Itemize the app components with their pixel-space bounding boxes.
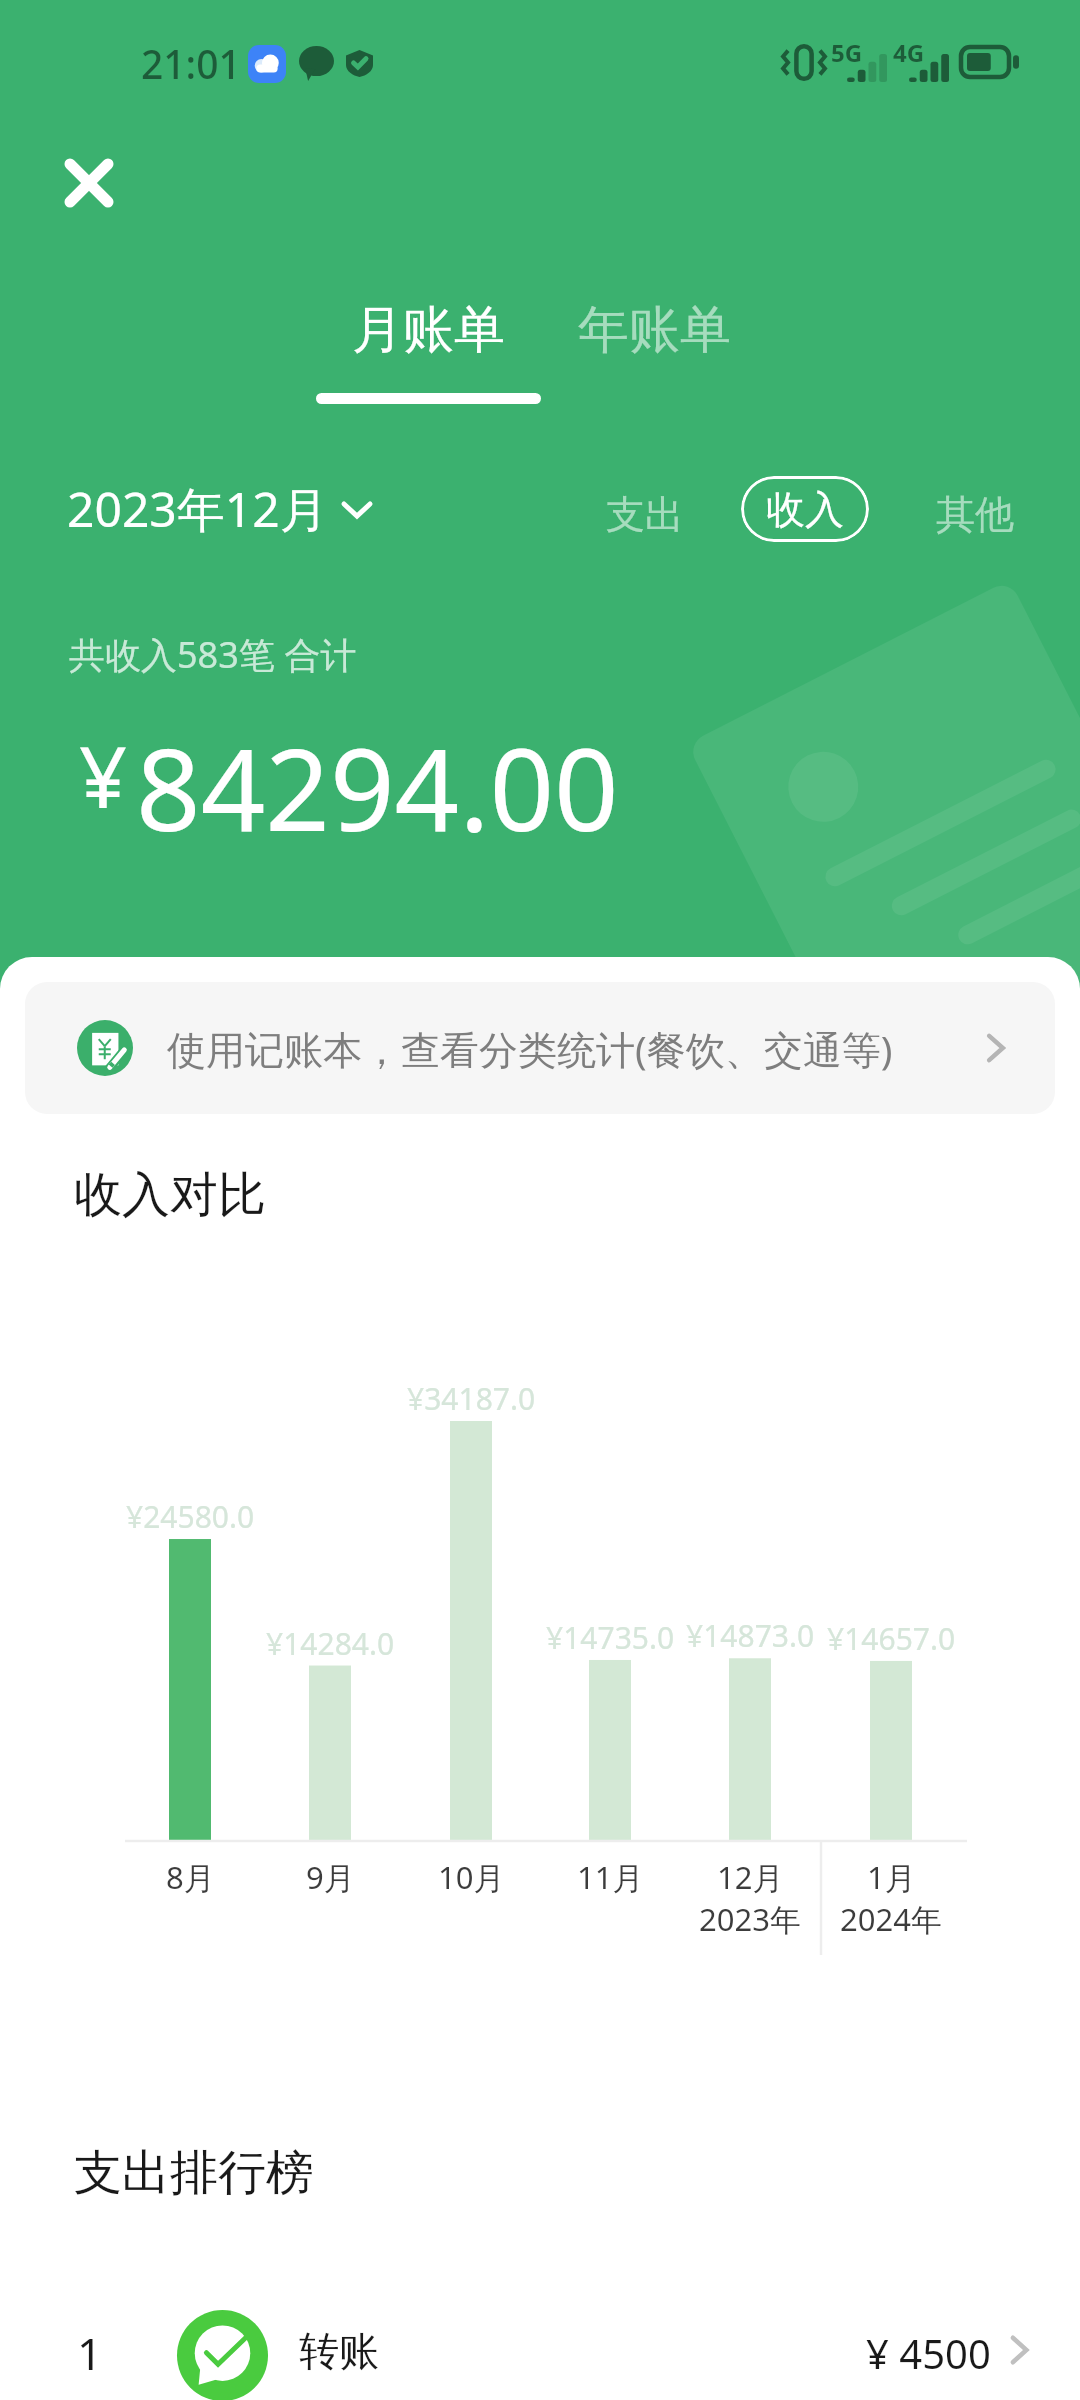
staticText: 其他 — [936, 490, 1014, 539]
button[interactable]: 使用记账本，查看分类统计(餐饮、交通等) — [25, 982, 1055, 1114]
staticText: 转账 — [299, 2326, 379, 2376]
button[interactable]: 2023年12月 — [67, 476, 372, 542]
staticText: 10月 — [438, 1856, 505, 1898]
staticText: ¥14657.0 — [827, 1618, 956, 1659]
staticText: 支出 — [606, 490, 684, 539]
staticText: ¥ — [79, 718, 128, 832]
staticText: 2023年12月 — [67, 476, 328, 542]
staticText: ¥14873.0 — [686, 1615, 815, 1656]
staticText: 月账单 — [352, 298, 505, 362]
staticText: 收入对比 — [74, 1165, 266, 1225]
staticText: 8月 — [166, 1856, 215, 1898]
button[interactable]: Close — [44, 138, 134, 228]
button[interactable]: 月账单 — [316, 298, 541, 404]
staticText: ¥14284.0 — [266, 1623, 395, 1664]
staticText: ¥24580.0 — [126, 1496, 255, 1537]
staticText: 21:01 — [141, 37, 241, 90]
staticText: 2023年 — [699, 1898, 801, 1940]
staticText: 11月 — [577, 1856, 644, 1898]
button[interactable]: 支出 — [596, 480, 694, 549]
staticText: ¥ 4500 — [866, 2326, 991, 2380]
button[interactable]: 其他 — [926, 480, 1024, 549]
staticText: 84294.00 — [136, 710, 619, 864]
button[interactable]: 收入 — [741, 476, 869, 542]
staticText: 支出排行榜 — [74, 2143, 314, 2203]
button[interactable]: 1 — [0, 2311, 1080, 2400]
staticText: 使用记账本，查看分类统计(餐饮、交通等) — [167, 1022, 893, 1075]
staticText: ¥34187.0 — [407, 1378, 536, 1419]
staticText: 年账单 — [578, 298, 731, 362]
staticText: 2024年 — [840, 1898, 942, 1940]
staticText: 12月 — [717, 1856, 784, 1898]
staticText: 收入 — [766, 485, 844, 534]
staticText: 5G — [831, 36, 863, 69]
staticText: 4G — [893, 36, 925, 69]
staticText: 1 — [77, 2323, 103, 2383]
staticText: 共收入583笔 合计 — [69, 630, 357, 679]
button[interactable]: 年账单 — [576, 298, 733, 362]
staticText: 9月 — [306, 1856, 355, 1898]
staticText: ¥14735.0 — [546, 1617, 675, 1658]
staticText: 1月 — [867, 1856, 916, 1898]
